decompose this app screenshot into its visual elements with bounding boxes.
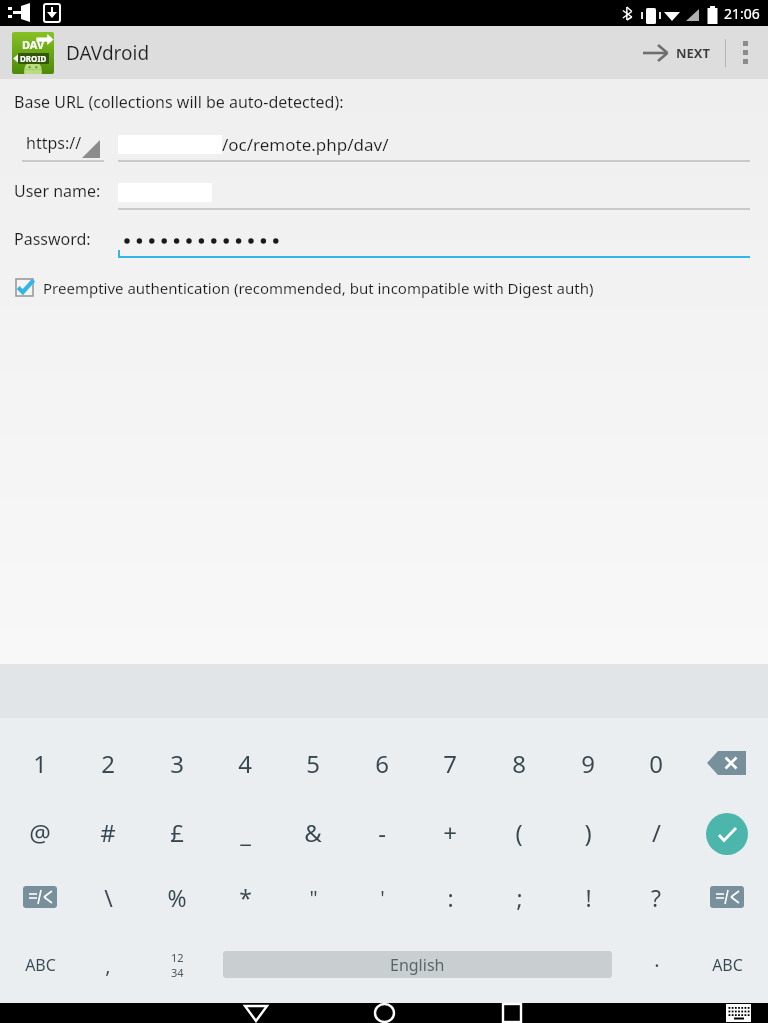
staticText: \: [104, 882, 113, 913]
button[interactable]: DAVdroid icon: [12, 32, 54, 74]
staticText: ·: [654, 952, 660, 979]
button[interactable]: ': [348, 873, 416, 921]
button[interactable]: NEXT: [633, 26, 719, 79]
staticText: ,: [105, 952, 111, 979]
button[interactable]: ,: [74, 941, 142, 989]
staticText: @: [29, 816, 51, 849]
button[interactable]: &: [279, 808, 347, 856]
button[interactable]: /oc/remote.php/dav/: [118, 125, 750, 169]
staticText: Preemptive authentication (recommended, …: [43, 278, 594, 298]
button[interactable]: Backspace: [693, 739, 761, 787]
staticText: 9: [581, 747, 595, 780]
button[interactable]: Preemptive authentication (recommended, …: [14, 277, 754, 298]
staticText: #: [100, 816, 116, 849]
staticText: User name:: [14, 180, 101, 202]
staticText: ': [380, 884, 385, 911]
button[interactable]: 5: [279, 739, 347, 787]
staticText: https://: [26, 132, 82, 154]
button[interactable]: @: [6, 808, 74, 856]
staticText: 6: [375, 747, 389, 780]
staticText: DAVdroid: [66, 40, 150, 66]
button[interactable]: _: [211, 808, 279, 856]
staticText: DROID: [20, 53, 47, 64]
button[interactable]: Symbols: [693, 873, 761, 921]
button[interactable]: Switch keyboard: [708, 1003, 768, 1023]
button[interactable]: ): [554, 808, 622, 856]
button[interactable]: 1: [6, 739, 74, 787]
button[interactable]: [118, 173, 750, 217]
staticText: Password:: [14, 228, 91, 250]
button[interactable]: !: [554, 873, 622, 921]
staticText: 34: [171, 965, 184, 980]
button[interactable]: #: [74, 808, 142, 856]
staticText: 3: [170, 747, 184, 780]
staticText: 5: [306, 747, 320, 780]
button[interactable]: Recent apps: [476, 1003, 548, 1023]
staticText: £: [170, 816, 184, 849]
staticText: 2: [101, 747, 115, 780]
button[interactable]: 12: [143, 941, 211, 989]
staticText: 0: [649, 747, 663, 780]
staticText: NEXT: [676, 44, 711, 62]
button[interactable]: Symbols: [6, 873, 74, 921]
staticText: /oc/remote.php/dav/: [222, 133, 389, 156]
button[interactable]: 9: [554, 739, 622, 787]
button[interactable]: 4: [211, 739, 279, 787]
staticText: 8: [512, 747, 526, 780]
button[interactable]: %: [143, 873, 211, 921]
staticText: %: [167, 882, 187, 913]
staticText: ?: [651, 882, 661, 913]
staticText: ABC: [25, 954, 56, 976]
button[interactable]: ;: [485, 873, 553, 921]
button[interactable]: *: [211, 873, 279, 921]
button[interactable]: £: [143, 808, 211, 856]
button[interactable]: ABC: [693, 941, 761, 989]
button[interactable]: ·: [623, 941, 691, 989]
button[interactable]: Home: [348, 1003, 420, 1023]
staticText: _: [240, 816, 251, 849]
button[interactable]: +: [416, 808, 484, 856]
button[interactable]: https://: [0, 125, 104, 169]
button[interactable]: 6: [348, 739, 416, 787]
staticText: ABC: [712, 954, 743, 976]
button[interactable]: 7: [416, 739, 484, 787]
staticText: 7: [443, 747, 457, 780]
button[interactable]: Back: [220, 1003, 292, 1023]
button[interactable]: 8: [485, 739, 553, 787]
staticText: 21:06: [724, 4, 760, 23]
staticText: ;: [516, 882, 523, 913]
staticText: ": [309, 884, 318, 911]
staticText: /: [652, 816, 661, 849]
button[interactable]: (: [485, 808, 553, 856]
button[interactable]: ": [279, 873, 347, 921]
staticText: English: [390, 954, 445, 976]
staticText: *: [239, 882, 252, 913]
button[interactable]: -: [348, 808, 416, 856]
button[interactable]: 3: [143, 739, 211, 787]
staticText: Base URL (collections will be auto-detec…: [14, 91, 344, 113]
button[interactable]: 2: [74, 739, 142, 787]
staticText: +: [443, 816, 457, 849]
button[interactable]: English: [223, 951, 612, 978]
staticText: :: [447, 882, 454, 913]
button[interactable]: ABC: [6, 941, 74, 989]
button[interactable]: :: [416, 873, 484, 921]
staticText: 12: [171, 950, 184, 965]
button[interactable]: /: [622, 808, 690, 856]
staticText: 4: [238, 747, 252, 780]
button[interactable]: 0: [622, 739, 690, 787]
staticText: !: [585, 882, 592, 913]
staticText: 1: [33, 747, 47, 780]
button[interactable]: [118, 221, 750, 265]
staticText: DAV: [22, 37, 45, 52]
staticText: (: [515, 816, 523, 849]
staticText: -: [378, 816, 386, 849]
button[interactable]: \: [74, 873, 142, 921]
staticText: ): [584, 816, 592, 849]
button[interactable]: ?: [622, 873, 690, 921]
button[interactable]: Enter: [693, 810, 761, 858]
staticText: &: [304, 816, 322, 849]
button[interactable]: More options: [726, 26, 764, 79]
